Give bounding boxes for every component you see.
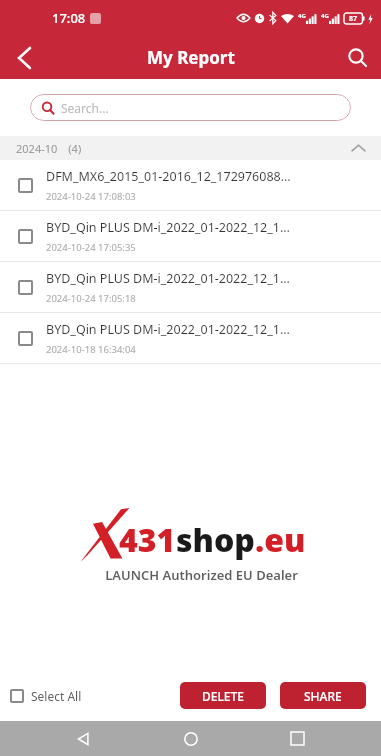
- staticText: BYD_Qin PLUS DM-i_2022_01-2022_12_1…: [46, 270, 290, 287]
- button[interactable]: 2024-10 (4): [0, 136, 381, 160]
- staticText: Select All: [31, 688, 82, 704]
- staticText: BYD_Qin PLUS DM-i_2022_01-2022_12_1…: [46, 219, 290, 236]
- button[interactable]: Back: [62, 721, 106, 756]
- button[interactable]: Select report: [9, 271, 41, 303]
- button[interactable]: Search: [333, 36, 381, 79]
- button[interactable]: Back: [0, 36, 48, 79]
- staticText: .eu: [255, 518, 306, 562]
- staticText: SHARE: [304, 688, 342, 704]
- button[interactable]: Select All: [10, 688, 82, 704]
- staticText: shop: [176, 518, 255, 562]
- staticText: 4G: [321, 12, 329, 20]
- staticText: Search...: [61, 100, 109, 116]
- staticText: DFM_MX6_2015_01-2016_12_172976088…: [46, 168, 291, 185]
- button[interactable]: Select report: [0, 211, 381, 261]
- button[interactable]: SHARE: [280, 682, 366, 709]
- staticText: BYD_Qin PLUS DM-i_2022_01-2022_12_1…: [46, 321, 290, 338]
- staticText: 17:08: [52, 9, 86, 27]
- button[interactable]: Select report: [9, 322, 41, 354]
- staticText: LAUNCH Authorized EU Dealer: [105, 566, 298, 584]
- staticText: 2024-10 (4): [16, 141, 82, 156]
- staticText: 4G: [298, 12, 306, 20]
- staticText: 2024-10-24 17:08:03: [46, 190, 136, 203]
- button[interactable]: Select report: [9, 169, 41, 201]
- button[interactable]: Select report: [0, 262, 381, 312]
- button[interactable]: DELETE: [180, 682, 266, 709]
- staticText: 431: [119, 518, 176, 562]
- staticText: 2024-10-24 17:05:18: [46, 292, 136, 305]
- staticText: 2024-10-18 16:34:04: [46, 343, 136, 356]
- staticText: DELETE: [202, 688, 244, 704]
- button[interactable]: Select report: [0, 313, 381, 363]
- staticText: My Report: [147, 46, 235, 69]
- button[interactable]: Select report: [9, 220, 41, 252]
- staticText: 2024-10-24 17:05:35: [46, 241, 136, 254]
- button[interactable]: Search...: [30, 94, 351, 121]
- button[interactable]: Recent apps: [275, 721, 319, 756]
- button[interactable]: Select report: [0, 160, 381, 210]
- button[interactable]: Home: [169, 721, 213, 756]
- staticText: 87: [349, 14, 358, 24]
